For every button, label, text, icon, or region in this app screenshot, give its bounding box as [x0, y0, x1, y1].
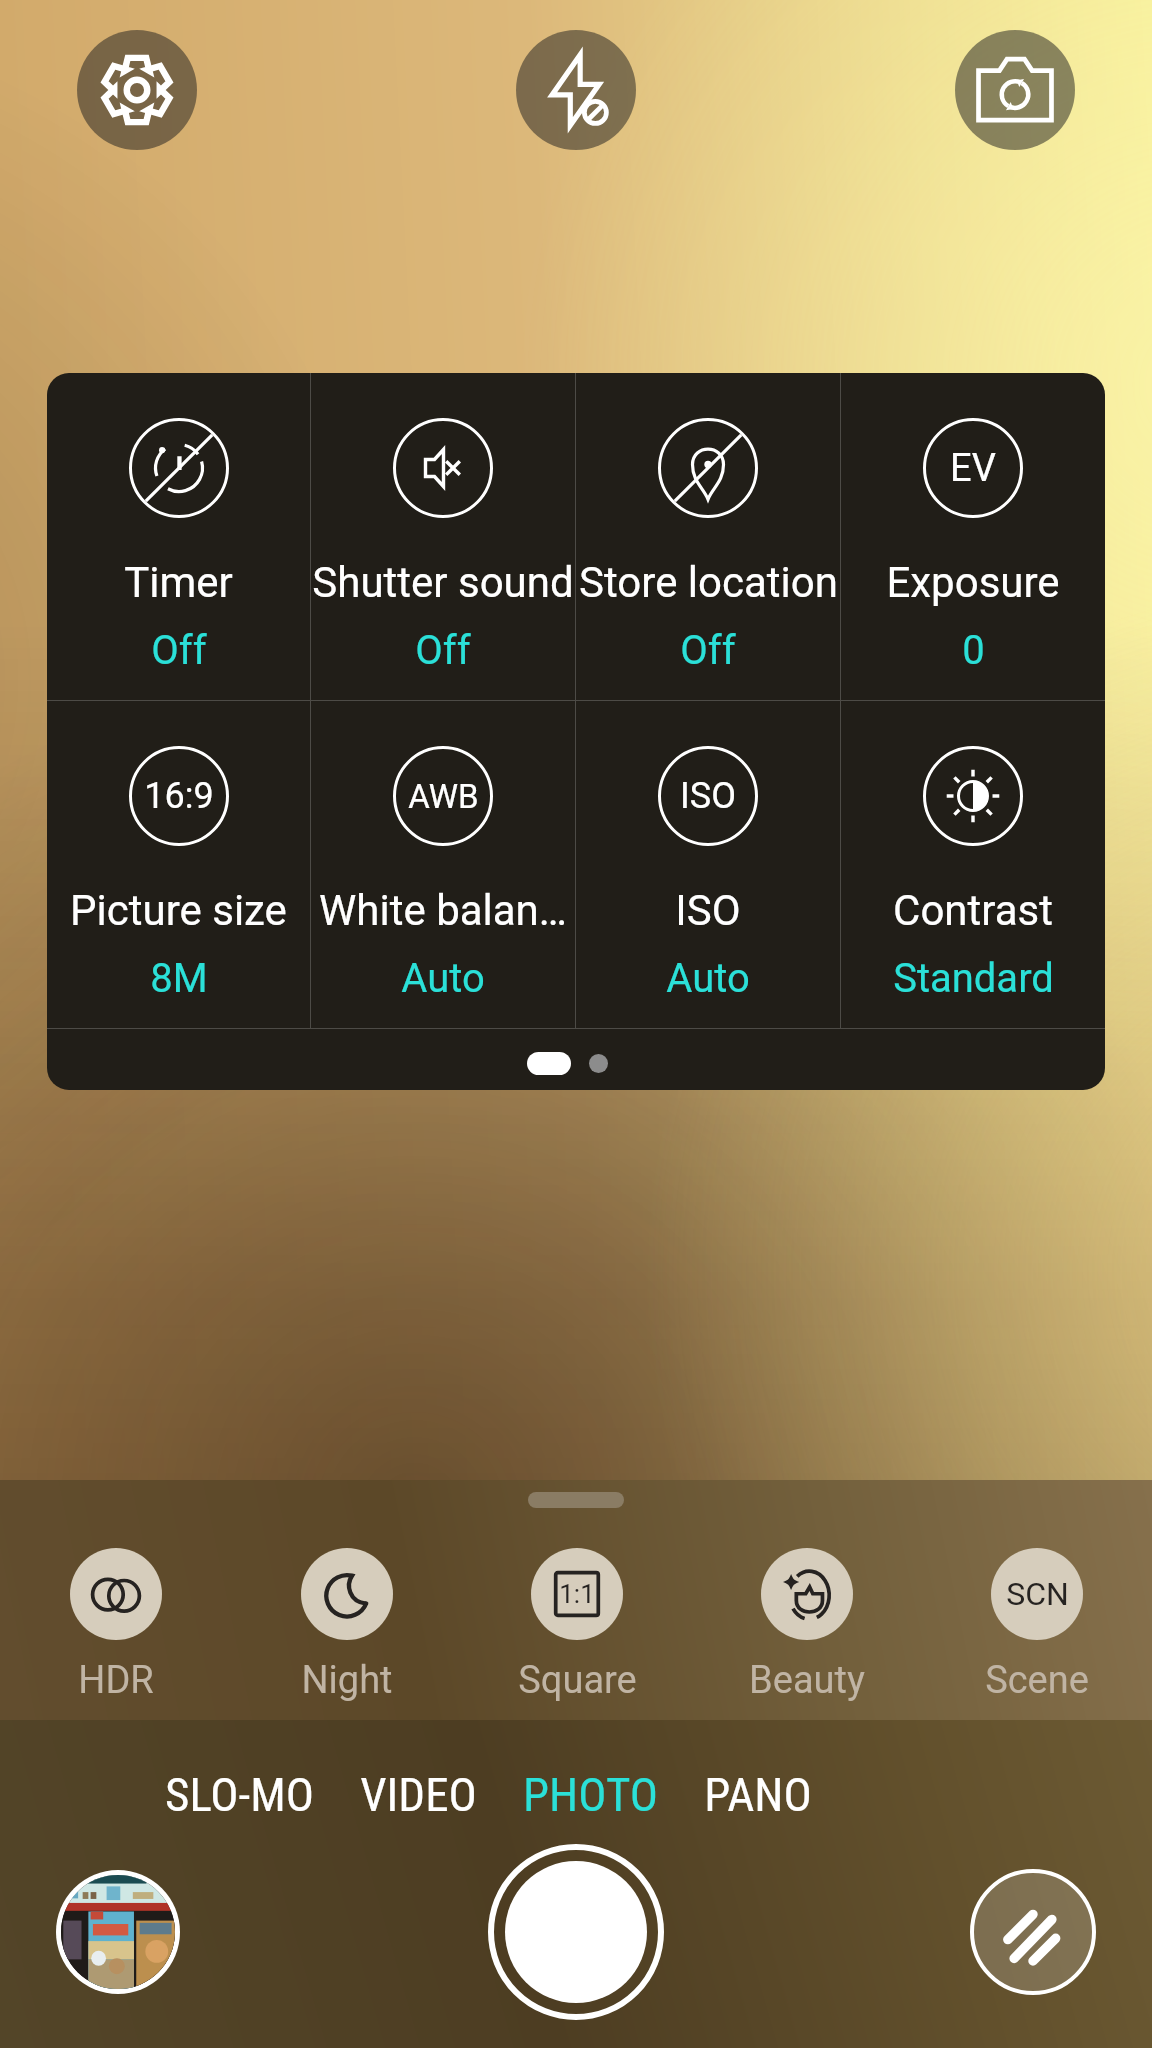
- staticText: Auto: [401, 955, 485, 1002]
- staticText: Auto: [666, 955, 750, 1002]
- button[interactable]: SCN: [922, 1548, 1152, 1703]
- button[interactable]: Contrast: [841, 701, 1105, 1028]
- button[interactable]: Beauty: [692, 1548, 922, 1703]
- staticText: ISO: [680, 775, 736, 817]
- staticText: Contrast: [893, 886, 1053, 935]
- staticText: SLO-MO: [165, 1767, 314, 1822]
- button[interactable]: 16:9: [47, 701, 310, 1028]
- staticText: Square: [518, 1658, 637, 1703]
- button[interactable]: PHOTO: [500, 1757, 681, 1832]
- button[interactable]: VIDEO: [337, 1757, 500, 1832]
- button[interactable]: Timer: [47, 373, 310, 700]
- staticText: White balan…: [319, 886, 567, 935]
- button[interactable]: Settings: [77, 30, 197, 150]
- button[interactable]: Switch camera: [955, 30, 1075, 150]
- staticText: HDR: [78, 1658, 154, 1703]
- button[interactable]: Shutter: [488, 1844, 664, 2020]
- button[interactable]: 1:1: [462, 1548, 692, 1703]
- staticText: Standard: [893, 955, 1054, 1002]
- button[interactable]: AWB: [311, 701, 575, 1028]
- button[interactable]: PANO: [681, 1757, 835, 1832]
- staticText: Off: [415, 627, 471, 674]
- staticText: PANO: [704, 1767, 812, 1822]
- button[interactable]: ISO: [576, 701, 840, 1028]
- staticText: 8M: [150, 955, 208, 1002]
- button[interactable]: Store location: [576, 373, 840, 700]
- button[interactable]: Night: [231, 1548, 462, 1703]
- staticText: 16:9: [144, 775, 214, 817]
- staticText: Timer: [124, 558, 233, 607]
- staticText: Exposure: [886, 558, 1060, 607]
- staticText: ISO: [675, 886, 741, 935]
- staticText: Beauty: [749, 1658, 865, 1703]
- button[interactable]: Flash off: [516, 30, 636, 150]
- staticText: SCN: [1006, 1575, 1069, 1613]
- staticText: Night: [301, 1658, 393, 1703]
- staticText: PHOTO: [523, 1767, 658, 1822]
- button[interactable]: SLO-MO: [142, 1757, 337, 1832]
- staticText: Scene: [985, 1658, 1089, 1703]
- staticText: Picture size: [70, 886, 287, 935]
- staticText: Shutter sound: [312, 558, 574, 607]
- button[interactable]: Filters: [970, 1869, 1096, 1995]
- staticText: Off: [680, 627, 736, 674]
- staticText: Off: [151, 627, 207, 674]
- button[interactable]: Shutter sound: [311, 373, 575, 700]
- button[interactable]: HDR: [0, 1548, 231, 1703]
- staticText: 0: [962, 627, 985, 674]
- staticText: Store location: [579, 558, 838, 607]
- staticText: 1:1: [559, 1579, 595, 1609]
- button[interactable]: EV: [841, 373, 1105, 700]
- button[interactable]: Last photo: [61, 1875, 175, 1989]
- staticText: VIDEO: [360, 1767, 477, 1822]
- staticText: AWB: [408, 777, 479, 816]
- staticText: EV: [950, 446, 996, 491]
